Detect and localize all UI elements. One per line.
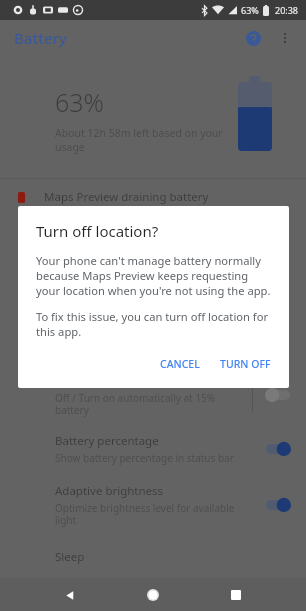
button[interactable]: [263, 383, 293, 407]
staticText: Optimize brightness level for available …: [55, 501, 235, 527]
button[interactable]: TURN OFF: [212, 351, 279, 377]
button[interactable]: Battery saver: [0, 373, 306, 417]
staticText: Adaptive brightness: [55, 483, 164, 499]
staticText: About 12h 58m left based on your usage: [55, 126, 223, 154]
staticText: Battery: [14, 28, 67, 48]
staticText: Maps Preview draining battery: [44, 189, 209, 205]
staticText: 63%: [55, 85, 104, 119]
button[interactable]: More options: [272, 25, 298, 51]
button[interactable]: Back: [55, 580, 85, 610]
button[interactable]: [263, 493, 293, 517]
staticText: To fix this issue, you can turn off loca…: [36, 309, 273, 339]
staticText: Battery saver: [55, 373, 127, 389]
button[interactable]: CANCEL: [152, 351, 208, 377]
button[interactable]: Home: [138, 580, 168, 610]
staticText: CANCEL: [160, 357, 200, 371]
button[interactable]: [263, 437, 293, 461]
button[interactable]: Recent apps: [221, 580, 251, 610]
staticText: 20:38: [275, 4, 299, 16]
button[interactable]: Adaptive brightness: [0, 483, 306, 527]
staticText: Sleep: [55, 549, 85, 565]
staticText: Off / Turn on automatically at 15% batte…: [55, 391, 216, 417]
staticText: Turn off location?: [36, 221, 159, 241]
staticText: Show battery percentage in status bar: [55, 451, 234, 465]
staticText: 63%: [241, 4, 259, 16]
staticText: TURN OFF: [220, 357, 271, 371]
button[interactable]: Battery percentage: [0, 433, 306, 465]
button[interactable]: Help: [240, 25, 266, 51]
staticText: Battery percentage: [55, 433, 159, 449]
staticText: Your phone can't manage battery normally…: [36, 253, 273, 298]
button[interactable]: Maps Preview draining battery: [0, 179, 306, 215]
